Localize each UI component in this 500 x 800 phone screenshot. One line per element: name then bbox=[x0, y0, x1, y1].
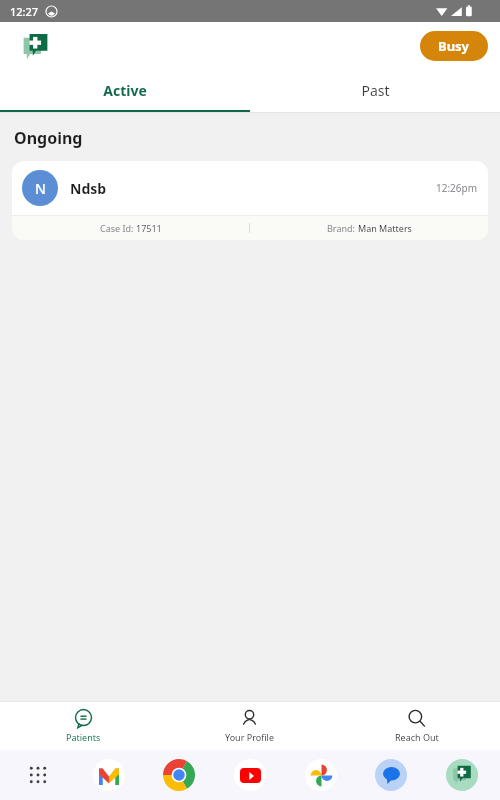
staticText: 17511 bbox=[136, 222, 162, 234]
button[interactable]: Your Profile bbox=[166, 702, 333, 750]
staticText: Ndsb bbox=[70, 179, 107, 198]
button[interactable]: All apps bbox=[22, 759, 54, 791]
staticText: Patients bbox=[66, 731, 101, 743]
staticText: Your Profile bbox=[225, 731, 274, 743]
staticText: Case Id: bbox=[100, 222, 136, 234]
button[interactable]: Patients bbox=[0, 702, 166, 750]
button[interactable]: YouTube bbox=[234, 759, 266, 791]
button[interactable]: Reach Out bbox=[333, 702, 500, 750]
staticText: Man Matters bbox=[358, 222, 412, 234]
staticText: Ongoing bbox=[14, 127, 83, 149]
button[interactable]: N bbox=[12, 161, 488, 240]
button[interactable]: Messages bbox=[375, 759, 407, 791]
staticText: 12:26pm bbox=[436, 181, 478, 195]
button[interactable]: Gmail bbox=[93, 759, 125, 791]
button[interactable]: Photos bbox=[305, 759, 337, 791]
button[interactable]: Past bbox=[250, 70, 500, 110]
staticText: N bbox=[35, 179, 46, 198]
button[interactable]: Open app bbox=[446, 759, 478, 791]
staticText: Past bbox=[361, 81, 390, 100]
button[interactable]: Busy bbox=[420, 31, 488, 61]
button[interactable]: Active bbox=[0, 70, 250, 110]
staticText: Reach Out bbox=[395, 731, 439, 743]
staticText: Brand: bbox=[327, 222, 358, 234]
staticText: Active bbox=[103, 81, 147, 100]
staticText: 12:27 bbox=[10, 4, 39, 19]
button[interactable]: Chrome bbox=[163, 759, 195, 791]
staticText: Busy bbox=[438, 37, 470, 55]
